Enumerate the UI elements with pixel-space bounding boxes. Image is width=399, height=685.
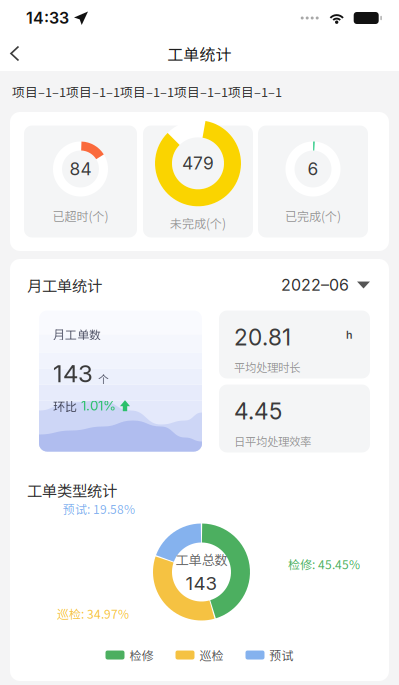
staticText: 检修: 45.45% [288, 555, 360, 573]
staticText: h [346, 328, 353, 341]
staticText: 1.01% [81, 398, 116, 414]
staticText: 14:33 [26, 8, 69, 28]
staticText: 2022–06 [281, 275, 349, 295]
staticText: 6 [307, 158, 318, 179]
button[interactable]: 6 [258, 125, 368, 237]
staticText: 工单类型统计 [27, 479, 117, 501]
staticText: 平均处理时长 [234, 359, 300, 375]
staticText: 月工单统计 [27, 274, 102, 296]
staticText: 检修 [129, 646, 153, 664]
staticText: 工单统计 [167, 42, 231, 65]
staticText: 预试 [269, 646, 293, 664]
staticText: 143 [53, 359, 93, 388]
staticText: 环比 [53, 397, 77, 414]
button[interactable]: 84 [24, 125, 137, 237]
staticText: 143 [185, 572, 217, 594]
button[interactable]: 2022–06 [281, 267, 370, 303]
staticText: 个 [98, 371, 109, 386]
staticText: 项目–1–1项目–1–1项目–1–1项目–1–1项目–1–1 [12, 82, 282, 101]
staticText: 巡检 [199, 646, 223, 664]
staticText: 巡检: 34.97% [57, 605, 129, 622]
staticText: 日平均处理效率 [234, 433, 311, 449]
staticText: 预试: 19.58% [63, 500, 135, 517]
button[interactable]: 返回 [0, 36, 46, 71]
staticText: 已完成(个) [285, 207, 341, 224]
staticText: 已超时(个) [52, 207, 108, 224]
staticText: 月工单数 [53, 325, 101, 343]
staticText: 未完成(个) [170, 214, 226, 232]
staticText: 84 [69, 158, 91, 179]
staticText: 479 [182, 153, 214, 174]
staticText: 20.81 [234, 323, 291, 351]
staticText: 4.45 [234, 397, 282, 425]
button[interactable]: 479 [143, 125, 253, 237]
staticText: 工单总数 [175, 550, 227, 569]
button[interactable]: 项目–1–1项目–1–1项目–1–1项目–1–1项目–1–1 [0, 71, 399, 112]
